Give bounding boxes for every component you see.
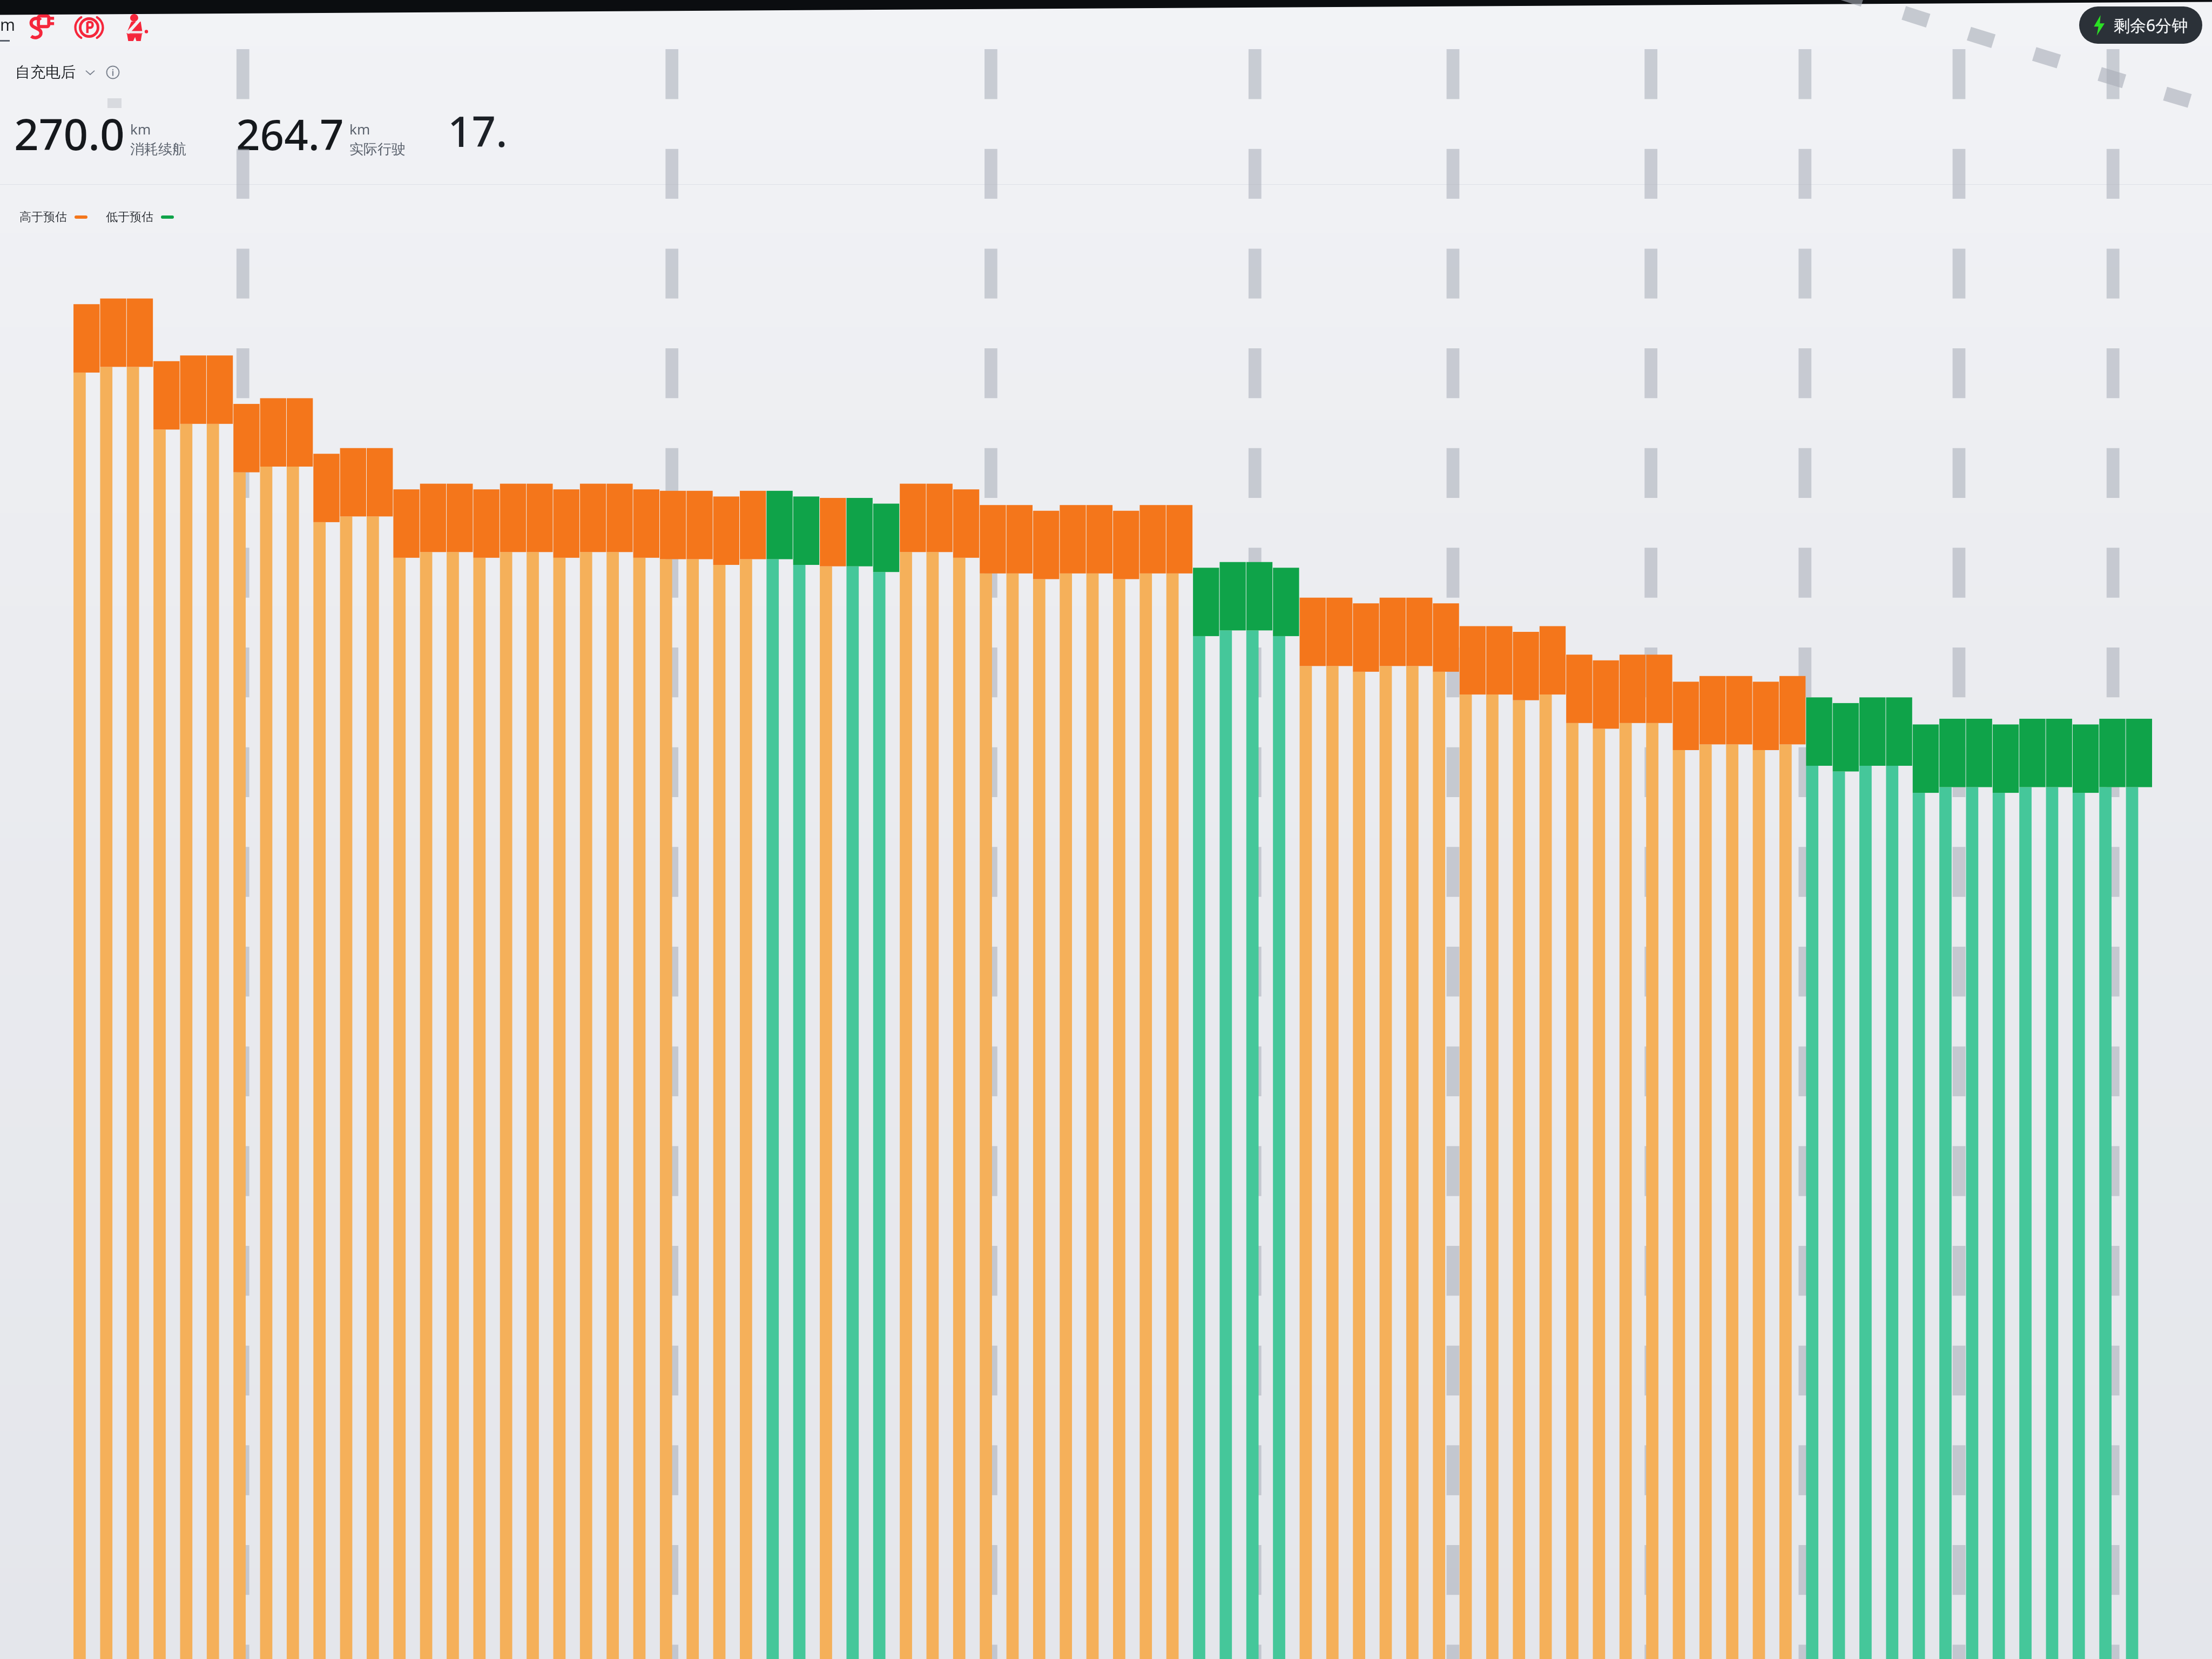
staticText: 270.0: [14, 104, 125, 163]
staticText: km: [130, 119, 151, 138]
staticText: 实际行驶: [349, 140, 406, 158]
button[interactable]: 剩余6分钟: [2079, 6, 2202, 44]
staticText: 剩余6分钟: [2114, 14, 2188, 36]
button[interactable]: 高于预估: [12, 202, 2212, 1659]
staticText: 低于预估: [106, 210, 153, 225]
staticText: 自充电后: [15, 63, 76, 82]
staticText: 264.7: [236, 105, 344, 163]
button[interactable]: 自充电后: [14, 60, 121, 84]
staticText: m: [0, 14, 12, 36]
button[interactable]: Seatbelt not fastened: [119, 12, 150, 43]
staticText: 17.: [448, 102, 508, 159]
staticText: 消耗续航: [130, 140, 186, 158]
button[interactable]: Charging cable connected warning: [28, 12, 59, 43]
button[interactable]: Info: [106, 65, 120, 79]
staticText: 高于预估: [19, 210, 67, 225]
button[interactable]: Parking brake engaged: [73, 12, 105, 43]
staticText: km: [349, 119, 370, 138]
